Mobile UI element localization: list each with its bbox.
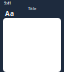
staticText: Aa xyxy=(5,9,14,18)
staticText: 9:41 xyxy=(4,0,11,6)
staticText: Title xyxy=(28,6,36,11)
